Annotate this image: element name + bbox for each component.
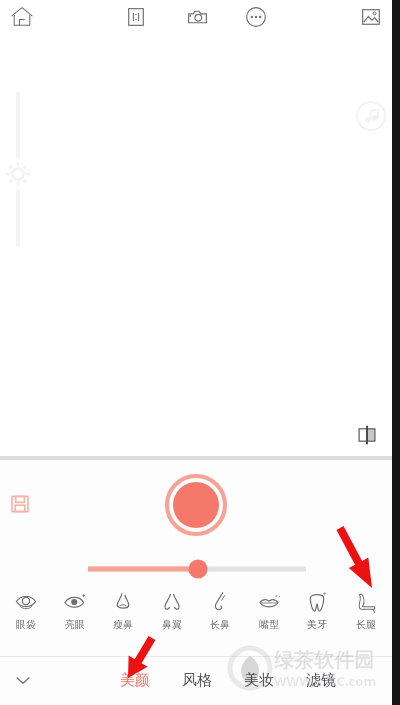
staticText: 嘴型 [259,618,279,631]
button[interactable]: Save [4,488,36,520]
button[interactable]: 长鼻 [198,586,242,644]
button[interactable]: 嘴型 [247,586,291,644]
staticText: WWW.33LC.com [274,672,377,690]
staticText: 鼻翼 [162,618,182,631]
button[interactable]: 风格 [166,657,228,703]
button[interactable]: 美颜 [104,657,166,703]
button[interactable]: Aspect ratio 1:1 [118,0,154,35]
button[interactable]: 长腿 [344,586,388,644]
button[interactable]: Home [4,0,40,35]
staticText: 风格 [182,671,212,690]
button[interactable]: Camera mode [179,0,215,35]
staticText: 瘦鼻 [113,618,133,631]
button[interactable]: 美牙 [295,586,339,644]
button[interactable]: 眼袋 [4,586,48,644]
staticText: 长腿 [356,618,376,631]
staticText: 美妆 [244,671,274,690]
button[interactable]: 鼻翼 [150,586,194,644]
staticText: 滤镜 [306,671,336,690]
staticText: 眼袋 [16,618,36,631]
staticText: 美牙 [307,618,327,631]
staticText: 亮眼 [65,618,85,631]
button[interactable]: Gallery [353,0,389,35]
button[interactable]: Shutter [165,474,227,536]
button[interactable]: Collapse [6,663,40,697]
button[interactable]: Mirror [350,418,384,452]
staticText: 长鼻 [210,618,230,631]
button[interactable]: 亮眼 [53,586,97,644]
button[interactable]: 滤镜 [290,657,352,703]
staticText: 绿茶软件园 [274,648,374,673]
button[interactable]: 美妆 [228,657,290,703]
button[interactable]: Music [355,100,387,132]
staticText: 美颜 [120,671,150,690]
button[interactable]: More options [238,0,274,35]
button[interactable]: 瘦鼻 [101,586,145,644]
